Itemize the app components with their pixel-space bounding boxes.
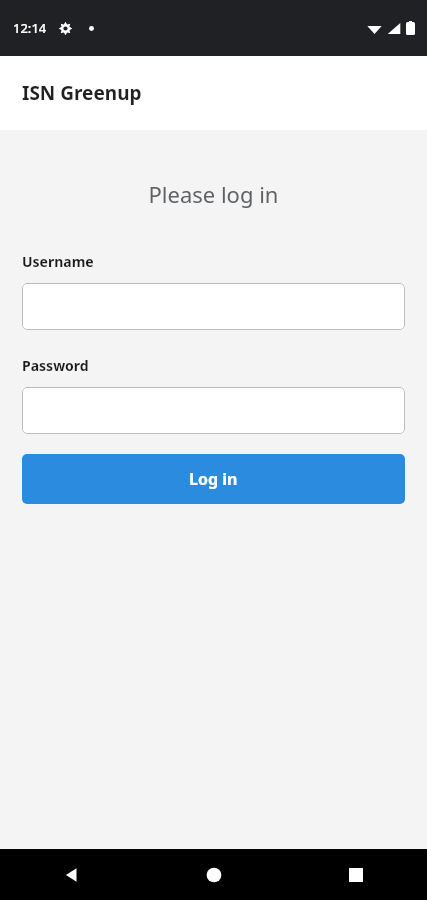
staticText: Log in <box>189 468 238 490</box>
staticText: Username <box>22 252 94 271</box>
staticText: Please log in <box>0 179 427 209</box>
button[interactable]: Text input field <box>22 387 405 434</box>
button[interactable]: Home <box>143 849 285 900</box>
button[interactable]: Recent apps <box>285 849 427 900</box>
button[interactable]: Log in <box>22 454 405 504</box>
button[interactable]: Text input field <box>22 283 405 330</box>
staticText: Password <box>22 356 89 375</box>
button[interactable]: Back <box>0 849 143 900</box>
staticText: 12:14 <box>13 19 47 37</box>
staticText: ISN Greenup <box>22 80 142 106</box>
